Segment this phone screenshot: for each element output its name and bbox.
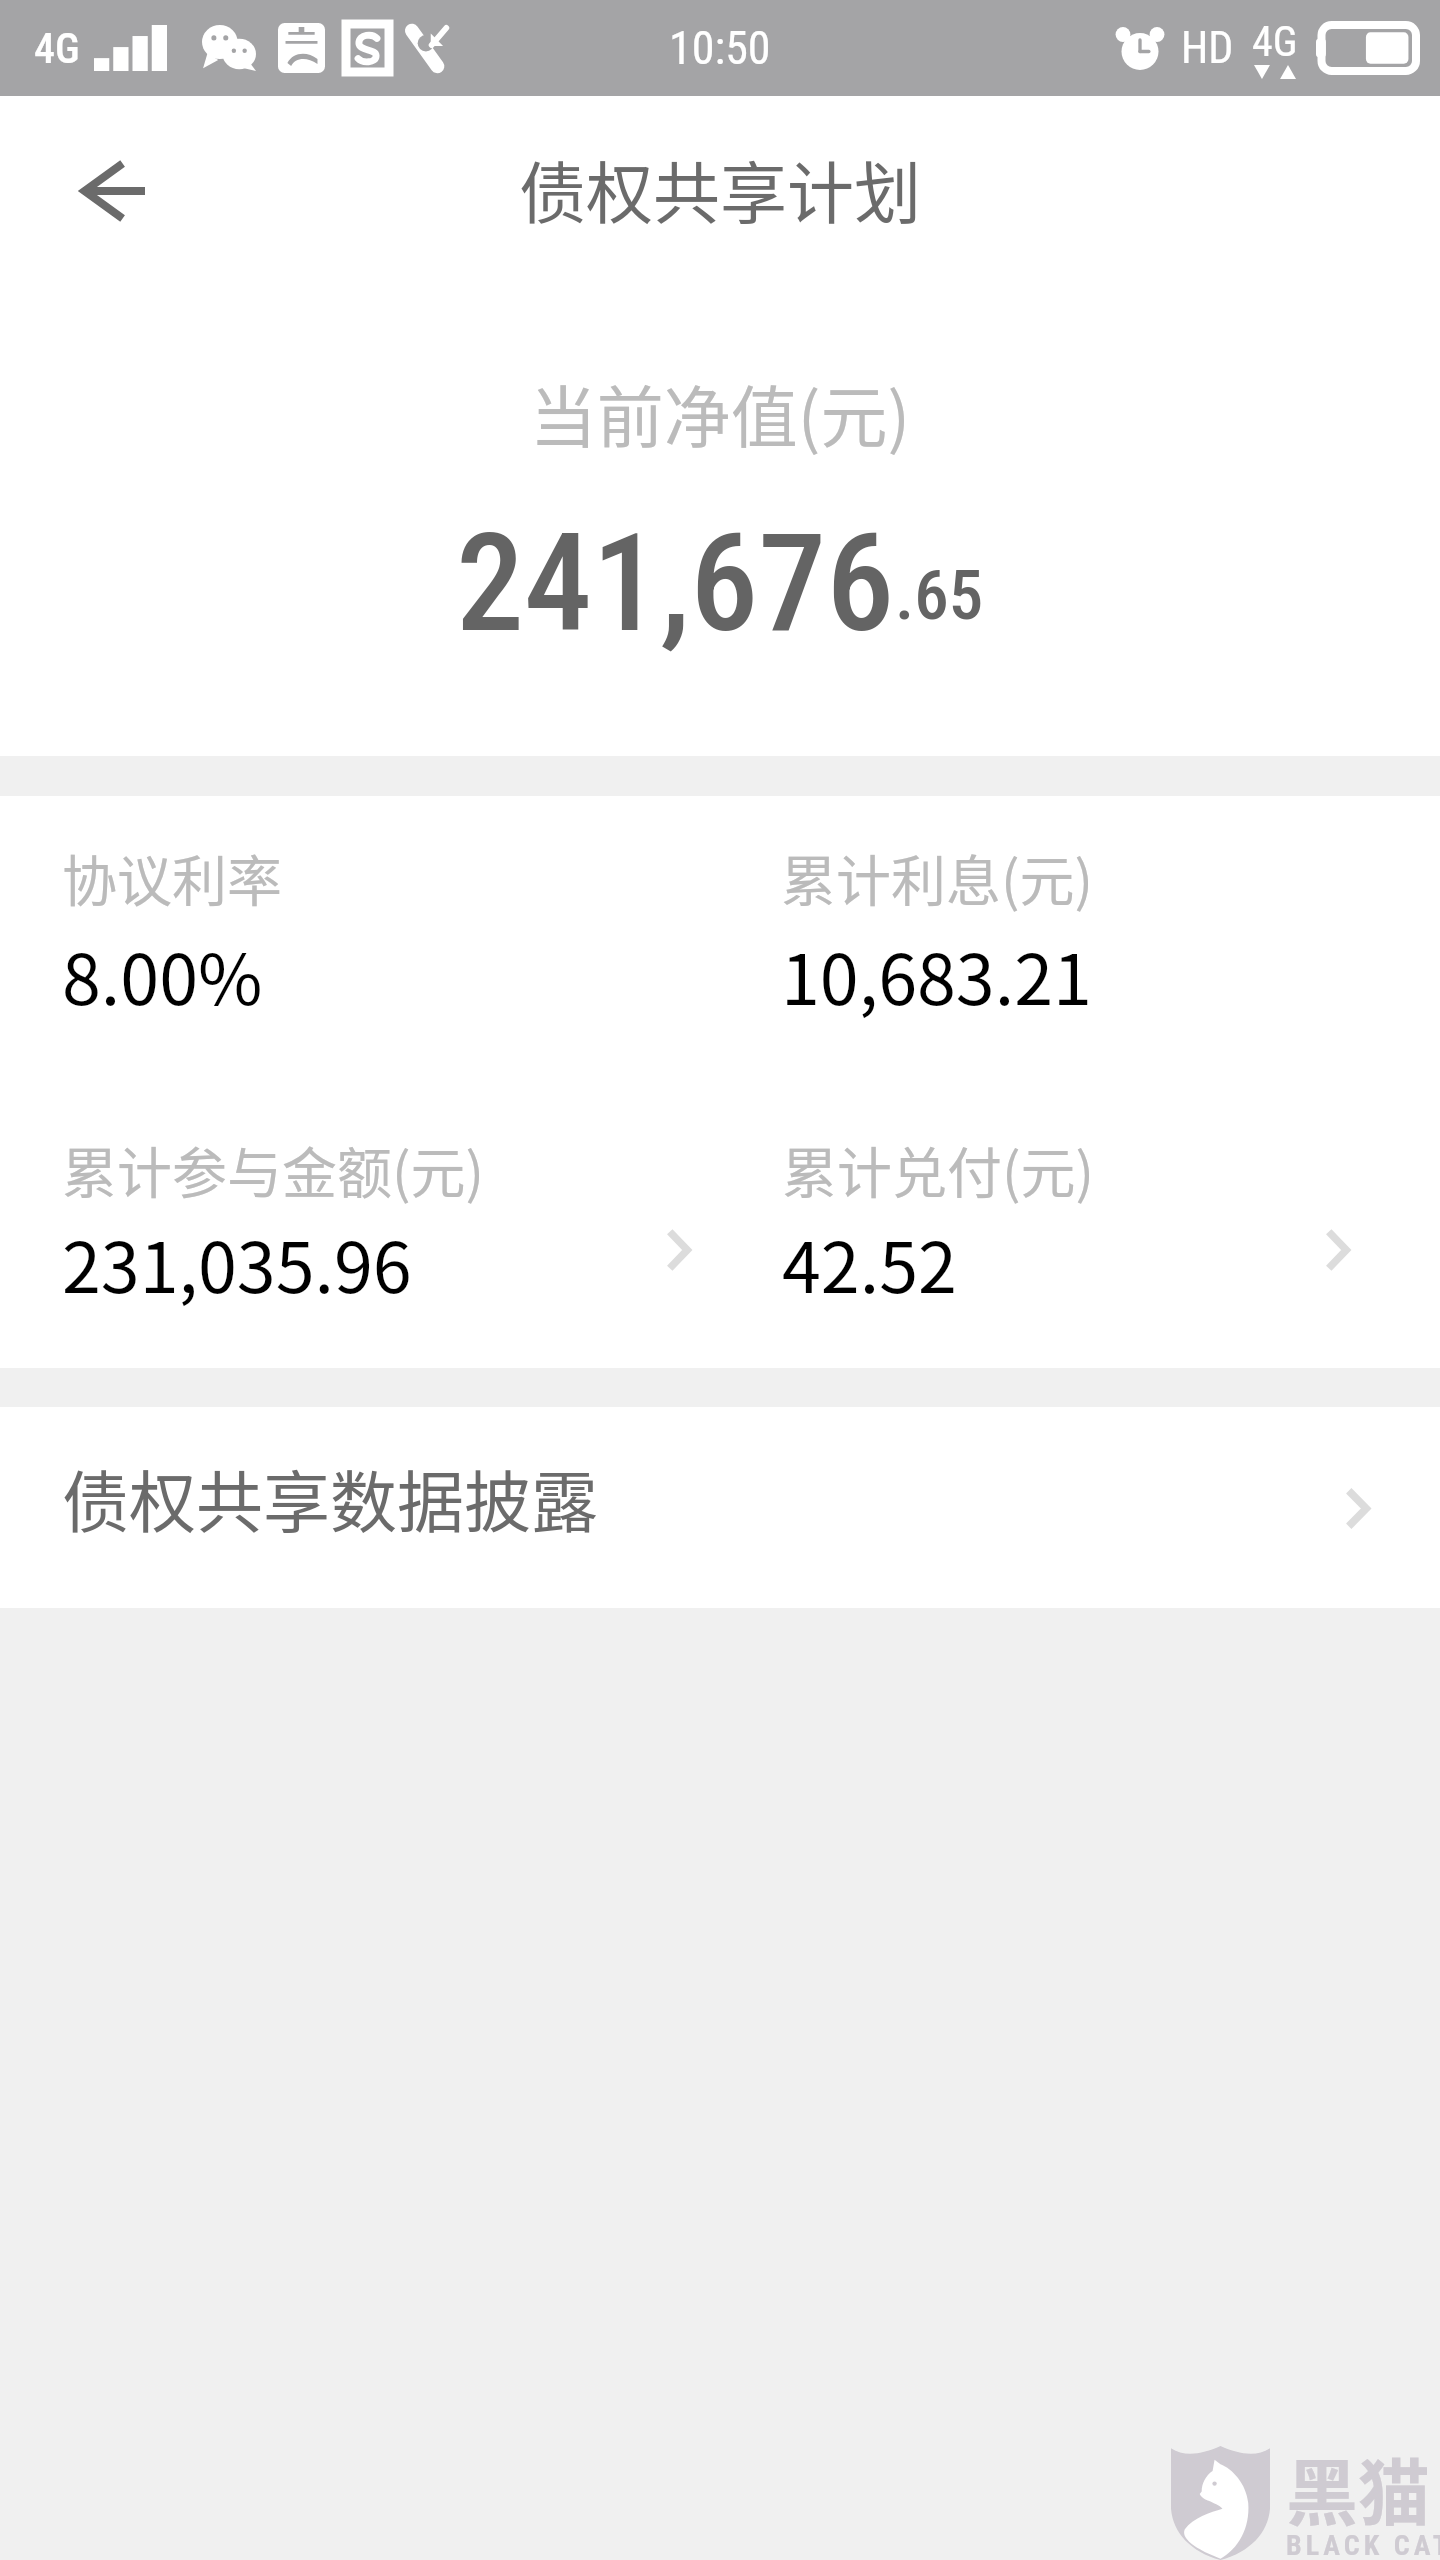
- staticText: 231,035.96: [62, 1212, 412, 1313]
- button[interactable]: 累计参与金额(元): [0, 1106, 720, 1306]
- button[interactable]: Back: [18, 96, 208, 286]
- staticText: 8.00%: [62, 924, 263, 1025]
- staticText: 债权共享计划: [519, 140, 921, 237]
- staticText: 10,683.21: [781, 924, 1092, 1025]
- staticText: BLACK CAT: [1286, 2529, 1440, 2560]
- button[interactable]: 累计兑付(元): [720, 1106, 1440, 1306]
- staticText: 债权共享数据披露: [62, 1449, 598, 1546]
- staticText: 42.52: [782, 1212, 957, 1313]
- staticText: HD: [1181, 22, 1234, 74]
- staticText: 241,676: [456, 504, 895, 663]
- staticText: 4G: [1252, 17, 1298, 66]
- staticText: 协议利率: [62, 837, 283, 917]
- staticText: 10:50: [669, 21, 771, 75]
- staticText: 累计参与金额(元): [62, 1129, 485, 1209]
- staticText: 黑猫: [1286, 2435, 1431, 2539]
- staticText: 累计兑付(元): [782, 1129, 1095, 1209]
- button[interactable]: 债权共享数据披露: [0, 1407, 1440, 1608]
- staticText: 4G: [34, 24, 80, 73]
- staticText: 当前净值(元): [0, 364, 1440, 461]
- staticText: 累计利息(元): [781, 837, 1094, 917]
- staticText: .65: [895, 555, 984, 636]
